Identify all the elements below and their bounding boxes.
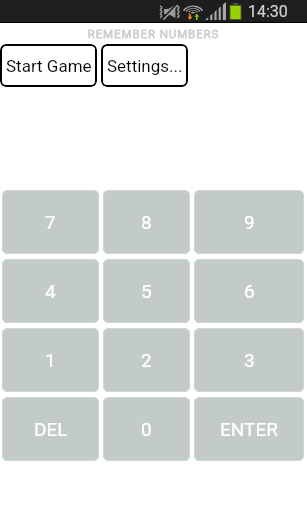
button[interactable]: 8 [103,190,190,254]
staticText: 5 [141,280,152,302]
button[interactable]: DEL [2,397,99,461]
button[interactable]: 6 [194,259,304,323]
staticText: Start Game [6,56,92,76]
staticText: DEL [34,418,68,440]
button[interactable]: 1 [2,328,99,392]
button[interactable]: 0 [103,397,190,461]
staticText: 14:30 [248,2,288,21]
staticText: 4 [45,280,56,302]
staticText: 8 [141,211,152,233]
staticText: 0 [141,418,152,440]
staticText: 2 [141,349,152,371]
staticText: Settings... [107,56,183,76]
staticText: 6 [244,280,255,302]
button[interactable]: Settings... [101,44,188,87]
button[interactable]: 3 [194,328,304,392]
button[interactable]: Start Game [0,44,97,87]
staticText: 1 [45,349,56,371]
button[interactable]: 4 [2,259,99,323]
button[interactable]: 9 [194,190,304,254]
staticText: 7 [45,211,56,233]
button[interactable]: 7 [2,190,99,254]
button[interactable]: 5 [103,259,190,323]
staticText: ENTER [220,418,278,440]
button[interactable]: ENTER [194,397,304,461]
button[interactable]: 2 [103,328,190,392]
staticText: 3 [244,349,255,371]
staticText: 9 [244,211,255,233]
staticText: REMEMBER NUMBERS [0,27,307,40]
